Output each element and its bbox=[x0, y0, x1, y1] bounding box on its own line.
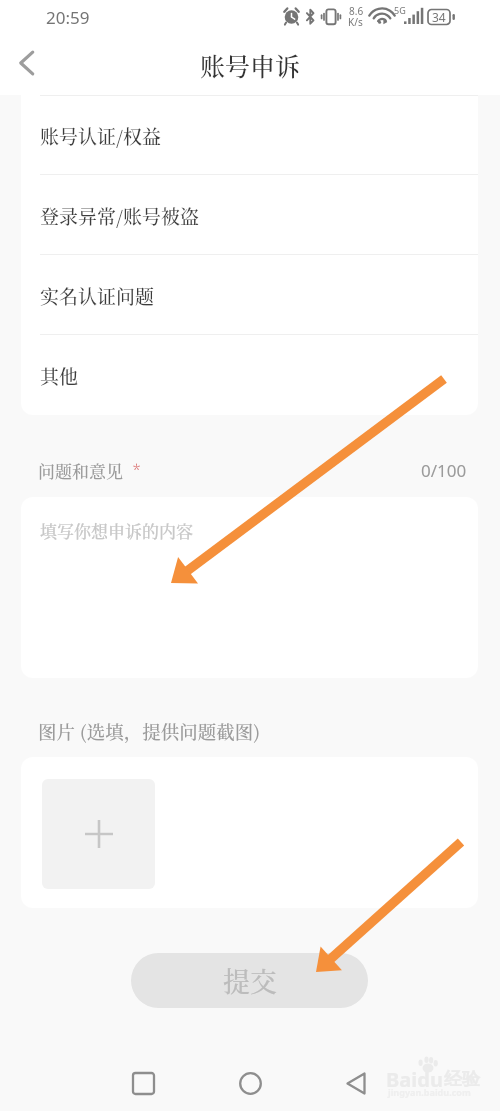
staticText: K/s bbox=[348, 15, 363, 29]
button[interactable]: 登录异常/账号被盗 bbox=[21, 175, 478, 255]
staticText: 登录异常/账号被盗 bbox=[40, 202, 199, 229]
staticText: 34 bbox=[432, 9, 446, 25]
button[interactable]: Back bbox=[332, 1060, 379, 1107]
staticText: 0/100 bbox=[421, 459, 467, 482]
staticText: 5G bbox=[394, 4, 406, 16]
staticText: 填写你想申诉的内容 bbox=[40, 518, 193, 542]
staticText: 提交 bbox=[223, 961, 277, 1000]
staticText: * bbox=[133, 459, 141, 481]
button[interactable]: Home bbox=[227, 1060, 274, 1107]
staticText: 问题和意见 bbox=[38, 458, 123, 482]
button[interactable]: 其他 bbox=[21, 335, 478, 415]
button[interactable]: Recents bbox=[120, 1060, 167, 1107]
staticText: 20:59 bbox=[46, 6, 90, 29]
button[interactable]: 实名认证问题 bbox=[21, 255, 478, 335]
button[interactable]: 提交 bbox=[131, 953, 368, 1008]
staticText: 经验 bbox=[444, 1068, 480, 1091]
button[interactable]: Back bbox=[4, 40, 50, 86]
button[interactable]: 账号认证/权益 bbox=[21, 95, 478, 175]
staticText: 账号申诉 bbox=[200, 47, 301, 83]
button[interactable]: Add image bbox=[42, 779, 155, 889]
staticText: 图片 (选填，提供问题截图) bbox=[38, 718, 261, 745]
staticText: 实名认证问题 bbox=[40, 282, 155, 309]
button[interactable]: 填写你想申诉的内容 bbox=[21, 497, 478, 678]
staticText: jingyan.baidu.com bbox=[388, 1086, 471, 1098]
staticText: 8.6 bbox=[349, 4, 364, 18]
staticText: Baidu bbox=[386, 1066, 443, 1093]
staticText: 账号认证/权益 bbox=[40, 122, 161, 149]
staticText: 其他 bbox=[40, 362, 79, 389]
